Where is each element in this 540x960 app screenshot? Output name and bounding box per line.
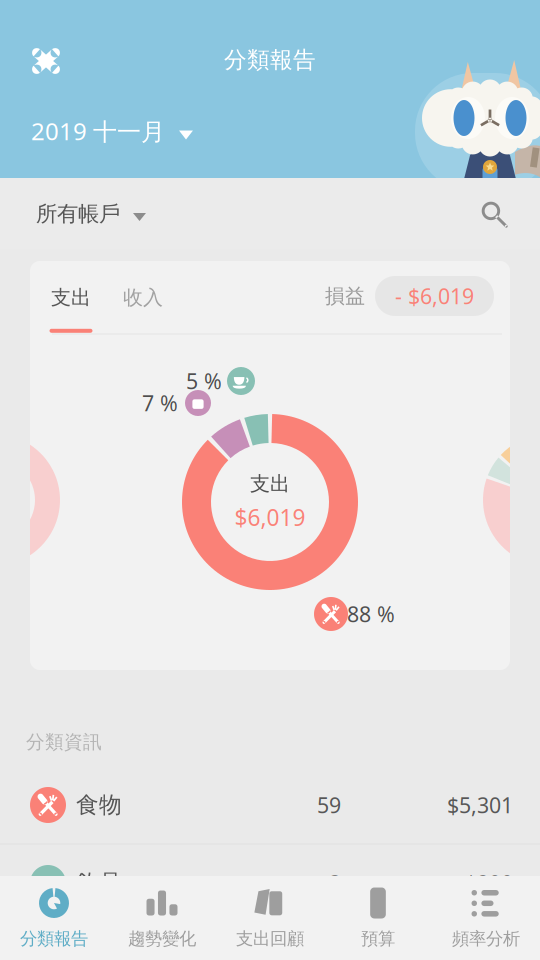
staticText: 3: [329, 869, 341, 897]
staticText: 頻率分析: [452, 928, 520, 949]
staticText: 分類資訊: [26, 730, 102, 753]
staticText: 88 %: [347, 600, 395, 628]
staticText: 支出回顧: [236, 928, 304, 949]
staticText: 分類報告: [20, 928, 88, 949]
button[interactable]: Close: [15, 33, 77, 89]
staticText: $5,301: [447, 791, 513, 819]
staticText: 支出: [250, 472, 290, 496]
staticText: 59: [317, 791, 341, 819]
staticText: $290: [465, 869, 513, 897]
staticText: 飲品: [76, 869, 122, 897]
staticText: 2019 十一月: [31, 115, 165, 147]
staticText: 趨勢變化: [128, 928, 196, 949]
button[interactable]: 支出: [47, 276, 95, 336]
staticText: 預算: [361, 928, 395, 949]
button[interactable]: 頻率分析: [432, 876, 540, 960]
button[interactable]: 食物: [0, 766, 540, 844]
button[interactable]: 2019 十一月: [26, 108, 198, 154]
staticText: 分類報告: [224, 46, 316, 74]
staticText: $6,019: [234, 502, 305, 532]
staticText: - $6,019: [395, 282, 474, 310]
button[interactable]: 分類報告: [0, 876, 108, 960]
button[interactable]: 趨勢變化: [108, 876, 216, 960]
button[interactable]: 飲品: [0, 844, 540, 922]
staticText: 所有帳戶: [36, 201, 120, 227]
button[interactable]: Search: [462, 182, 526, 246]
button[interactable]: 所有帳戶: [31, 191, 151, 237]
staticText: 收入: [123, 285, 163, 310]
staticText: 5 %: [186, 367, 222, 395]
staticText: 食物: [76, 791, 122, 819]
staticText: 7 %: [142, 389, 178, 417]
staticText: 損益: [325, 284, 365, 308]
button[interactable]: 收入: [119, 276, 167, 336]
staticText: 支出: [51, 285, 91, 310]
button[interactable]: 預算: [324, 876, 432, 960]
button[interactable]: 支出回顧: [216, 876, 324, 960]
